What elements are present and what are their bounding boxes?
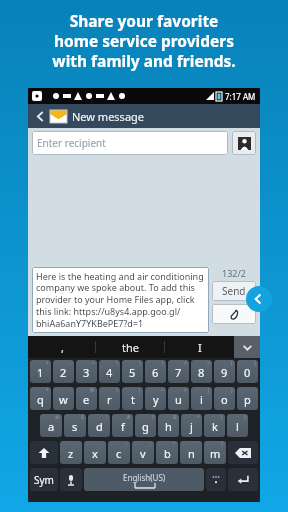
button[interactable]: & <box>158 414 179 437</box>
button[interactable]: + <box>30 387 51 410</box>
staticText: Send <box>222 284 246 298</box>
staticText: " <box>173 441 176 448</box>
staticText: f <box>121 419 125 434</box>
staticText: > <box>184 387 187 394</box>
button[interactable]: Keyboard settings <box>206 468 226 491</box>
button[interactable]: Voice input <box>60 468 82 491</box>
button[interactable]: ) <box>227 414 248 437</box>
staticText: ) <box>244 414 246 421</box>
staticText: | <box>138 387 141 394</box>
staticText: < <box>184 360 187 367</box>
staticText: / <box>152 414 154 421</box>
button[interactable]: - <box>53 360 74 383</box>
staticText: Sym <box>34 473 54 487</box>
button[interactable]: ( <box>191 387 212 410</box>
staticText: 0 <box>244 365 251 380</box>
button[interactable]: \ <box>99 387 120 410</box>
button[interactable]: ' <box>180 441 202 464</box>
staticText: ⊗ <box>55 414 60 420</box>
staticText: r <box>107 392 112 407</box>
staticText: $ <box>81 414 84 421</box>
staticText: 8 <box>198 365 205 380</box>
staticText: l <box>236 419 239 434</box>
staticText: # <box>127 414 131 421</box>
staticText: ( <box>208 387 210 394</box>
button[interactable]: \ <box>122 360 143 383</box>
staticText: g <box>142 419 149 434</box>
button[interactable]: ; <box>132 441 154 464</box>
staticText: ! <box>106 414 108 421</box>
staticText: 5 <box>129 365 136 380</box>
staticText: ( <box>221 414 223 421</box>
button[interactable]: z <box>60 441 82 464</box>
button[interactable]: / <box>135 414 156 437</box>
button[interactable]: + <box>30 360 51 383</box>
button[interactable]: I <box>165 336 234 358</box>
staticText: b <box>164 446 171 461</box>
button[interactable]: % <box>76 387 97 410</box>
button[interactable]: Previous <box>246 286 272 312</box>
staticText: n <box>188 446 195 461</box>
button[interactable]: x <box>84 441 106 464</box>
button[interactable]: ) <box>214 387 235 410</box>
button[interactable]: [ <box>214 360 235 383</box>
staticText: s <box>72 419 78 434</box>
button[interactable]: Sym <box>30 468 58 491</box>
button[interactable]: p <box>237 387 258 410</box>
staticText: + <box>46 387 49 394</box>
button[interactable]: Attach <box>212 304 256 324</box>
button[interactable]: , <box>28 336 96 358</box>
button[interactable]: ! <box>88 414 110 437</box>
button[interactable]: ? <box>204 441 226 464</box>
button[interactable]: < <box>168 360 189 383</box>
button[interactable]: ⊗ <box>40 414 62 437</box>
button[interactable]: ( <box>204 414 225 437</box>
button[interactable]: < <box>145 387 166 410</box>
staticText: ' <box>198 441 200 448</box>
button[interactable]: | <box>145 360 166 383</box>
button[interactable]: Back <box>28 104 260 128</box>
staticText: , <box>61 340 64 355</box>
button[interactable]: Send <box>212 281 256 301</box>
button[interactable]: > <box>191 360 212 383</box>
staticText: & <box>173 414 177 421</box>
staticText: 2 <box>60 365 67 380</box>
button[interactable]: : <box>108 441 130 464</box>
staticText: > <box>207 360 210 367</box>
button[interactable]: English(US) <box>84 468 204 491</box>
button[interactable]: > <box>168 387 189 410</box>
staticText: - <box>70 360 72 367</box>
staticText: a <box>48 419 55 434</box>
staticText: x <box>92 446 98 461</box>
staticText: m <box>210 446 221 461</box>
button[interactable]: Expand suggestions <box>234 336 260 358</box>
button[interactable]: $ <box>64 414 86 437</box>
staticText: English(US) <box>123 472 166 483</box>
button[interactable]: the <box>96 336 165 358</box>
button[interactable]: Enter recipient <box>32 131 228 155</box>
staticText: + <box>46 360 49 367</box>
button[interactable]: * <box>181 414 202 437</box>
button[interactable]: Shift <box>30 441 58 464</box>
staticText: < <box>161 387 164 394</box>
staticText: i <box>200 392 203 407</box>
staticText: \ <box>139 360 141 367</box>
button[interactable]: Here is the heating and air conditioning… <box>32 267 209 333</box>
staticText: Here is the heating and air conditioning… <box>36 270 205 330</box>
button[interactable]: = <box>76 360 97 383</box>
staticText: ) <box>231 387 233 394</box>
button[interactable]: - <box>53 387 74 410</box>
button[interactable]: | <box>122 387 143 410</box>
staticText: * <box>197 414 200 421</box>
staticText: \ <box>116 360 118 367</box>
staticText: q <box>37 392 44 407</box>
button[interactable]: Backspace <box>228 441 258 464</box>
staticText: ? <box>221 441 224 448</box>
button[interactable]: # <box>112 414 133 437</box>
button[interactable]: \ <box>99 360 120 383</box>
button[interactable]: ] <box>237 360 258 383</box>
staticText: 7:17 AM <box>225 91 256 102</box>
button[interactable]: Choose contact <box>232 131 256 155</box>
button[interactable]: " <box>156 441 178 464</box>
button[interactable]: Enter <box>228 468 258 491</box>
